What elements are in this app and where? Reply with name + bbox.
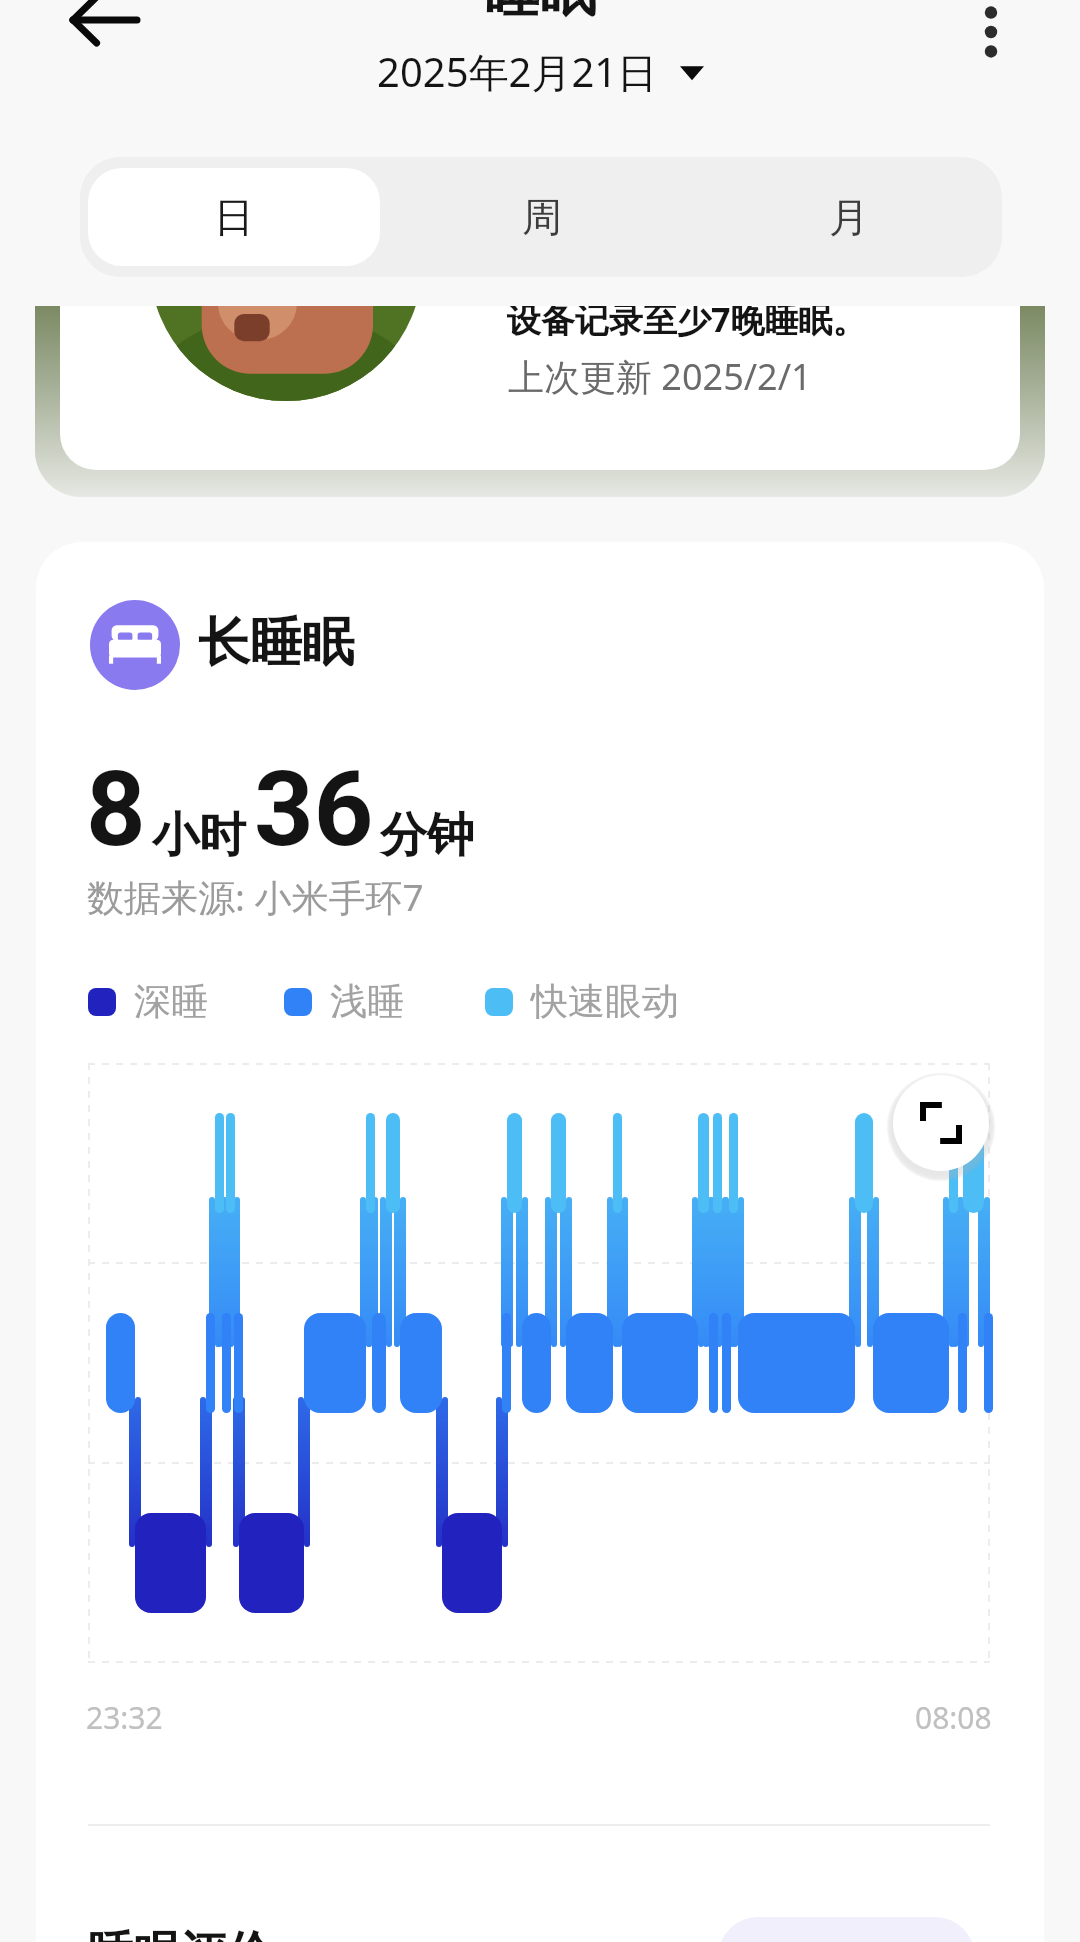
staticText: 数据来源: 小米手环7: [87, 871, 424, 922]
staticText: 小时: [152, 806, 246, 865]
button[interactable]: 周: [396, 168, 687, 266]
button[interactable]: More options: [945, 0, 1037, 78]
button[interactable]: 日: [88, 168, 380, 266]
staticText: 设备记录至少7晚睡眠。: [507, 306, 867, 342]
staticText: 08:08: [915, 1697, 992, 1738]
staticText: 23:32: [86, 1697, 163, 1738]
button[interactable]: Fullscreen: [893, 1075, 989, 1171]
staticText: 长睡眠: [198, 610, 354, 676]
staticText: 睡眠评价: [88, 1925, 272, 1942]
staticText: 日: [214, 192, 254, 242]
staticText: 分钟: [380, 806, 474, 865]
staticText: 周: [522, 192, 562, 242]
staticText: 睡眠: [484, 0, 596, 27]
button[interactable]: 月: [703, 168, 994, 266]
staticText: 8: [86, 749, 146, 871]
staticText: 深睡: [134, 978, 208, 1025]
staticText: 上次更新 2025/2/1: [508, 352, 812, 401]
staticText: 浅睡: [330, 978, 404, 1025]
staticText: 快速眼动: [531, 978, 679, 1025]
button[interactable]: Back: [57, 0, 153, 68]
staticText: 36: [254, 749, 374, 871]
staticText: 2025年2月21日: [377, 44, 658, 99]
staticText: 月: [829, 192, 869, 242]
